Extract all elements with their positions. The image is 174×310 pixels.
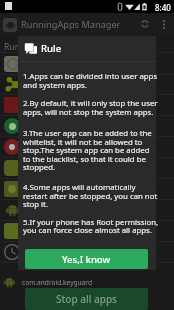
staticText: 4.Some apps will automatically xyxy=(23,182,136,193)
button[interactable] xyxy=(3,221,174,240)
button[interactable] xyxy=(3,242,174,261)
button[interactable] xyxy=(3,116,174,135)
staticText: RunningApps Manager xyxy=(21,18,121,31)
staticText: 5.If your phone has Root permission, xyxy=(23,217,159,228)
staticText: Running xyxy=(4,41,39,53)
staticText: 1.Apps can be divided into user apps xyxy=(23,71,158,82)
staticText: to the blacklist, so that it could be xyxy=(23,154,146,165)
button[interactable] xyxy=(3,74,174,93)
staticText: apps, will not stop the system apps. xyxy=(23,107,154,118)
staticText: 3.The user app can be added to the xyxy=(23,128,152,139)
staticText: you can force close almost all apps. xyxy=(23,225,152,236)
button[interactable]: App icon xyxy=(3,18,17,32)
staticText: 8:40 xyxy=(155,2,171,13)
button[interactable]: Yes,I know xyxy=(25,249,148,269)
button[interactable]: Refresh xyxy=(138,17,152,31)
button[interactable] xyxy=(3,137,174,156)
staticText: Yes,I know xyxy=(62,253,111,266)
staticText: stop it. xyxy=(23,199,49,210)
staticText: 2.By default, it will only stop the user xyxy=(23,98,158,109)
button[interactable] xyxy=(3,54,174,73)
staticText: whitelist, it will not be allowed to xyxy=(23,137,143,148)
button[interactable] xyxy=(3,95,174,114)
button[interactable]: More options xyxy=(157,17,171,31)
staticText: and system apps. xyxy=(23,80,87,91)
staticText: Stop all apps xyxy=(56,292,117,306)
staticText: stopped. xyxy=(23,162,56,173)
staticText: stop.The system app can be added xyxy=(23,145,150,156)
button[interactable] xyxy=(3,158,174,177)
staticText: restart after be stopped, you can not xyxy=(23,191,158,202)
button[interactable] xyxy=(3,179,174,198)
staticText: com.android.keyguard xyxy=(22,278,92,287)
button[interactable]: Stop all apps xyxy=(25,288,148,310)
staticText: Rule xyxy=(41,42,62,55)
button[interactable] xyxy=(3,200,174,219)
